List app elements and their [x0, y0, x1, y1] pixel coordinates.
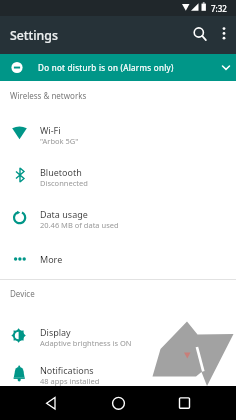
staticText: Data usage [40, 208, 88, 220]
staticText: Display [40, 326, 71, 338]
staticText: Notifications [40, 364, 94, 376]
button[interactable]: Notifications [0, 352, 236, 394]
staticText: 7:32 [211, 3, 227, 14]
staticText: 48 apps installed [40, 376, 100, 386]
button[interactable]: Wi-Fi [0, 112, 236, 154]
staticText: Device [10, 288, 35, 299]
staticText: Wi-Fi [40, 124, 61, 136]
button[interactable] [165, 386, 203, 420]
staticText: Adaptive brightness is ON [40, 338, 132, 348]
button[interactable] [215, 26, 233, 44]
staticText: Disconnected [40, 178, 88, 188]
staticText: Do not disturb is on (Alarms only) [38, 62, 174, 73]
staticText: Bluetooth [40, 166, 82, 178]
staticText: "Arbok 5G" [40, 136, 79, 146]
button[interactable]: Bluetooth [0, 154, 236, 196]
button[interactable]: Data usage [0, 196, 236, 238]
staticText: Wireless & networks [10, 90, 87, 101]
button[interactable] [32, 386, 70, 420]
staticText: 20.46 MB of data used [40, 220, 119, 230]
staticText: More [40, 253, 63, 265]
button[interactable]: More [0, 238, 236, 279]
button[interactable]: Do not disturb is on (Alarms only) [0, 54, 236, 81]
button[interactable] [99, 386, 137, 420]
staticText: Settings [10, 27, 58, 44]
button[interactable] [190, 24, 212, 46]
button[interactable]: Display [0, 314, 236, 356]
